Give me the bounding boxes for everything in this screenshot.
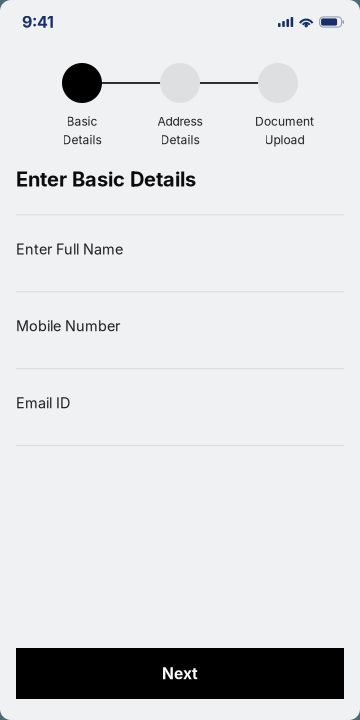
staticText: Address (157, 114, 202, 128)
staticText: Document (255, 114, 314, 128)
button[interactable]: Enter Full Name (0, 215, 360, 292)
staticText: Email ID (16, 394, 70, 412)
button[interactable]: Next (16, 648, 344, 699)
staticText: 9:41 (22, 12, 54, 32)
staticText: Details (160, 132, 199, 147)
staticText: Upload (264, 132, 304, 147)
button[interactable]: Email ID (0, 369, 360, 446)
staticText: Enter Full Name (16, 240, 123, 258)
staticText: Details (62, 132, 101, 147)
button[interactable]: Mobile Number (0, 292, 360, 369)
staticText: Basic (66, 114, 97, 128)
staticText: Mobile Number (16, 317, 120, 335)
staticText: Next (162, 664, 198, 683)
staticText: Enter Basic Details (16, 167, 196, 191)
